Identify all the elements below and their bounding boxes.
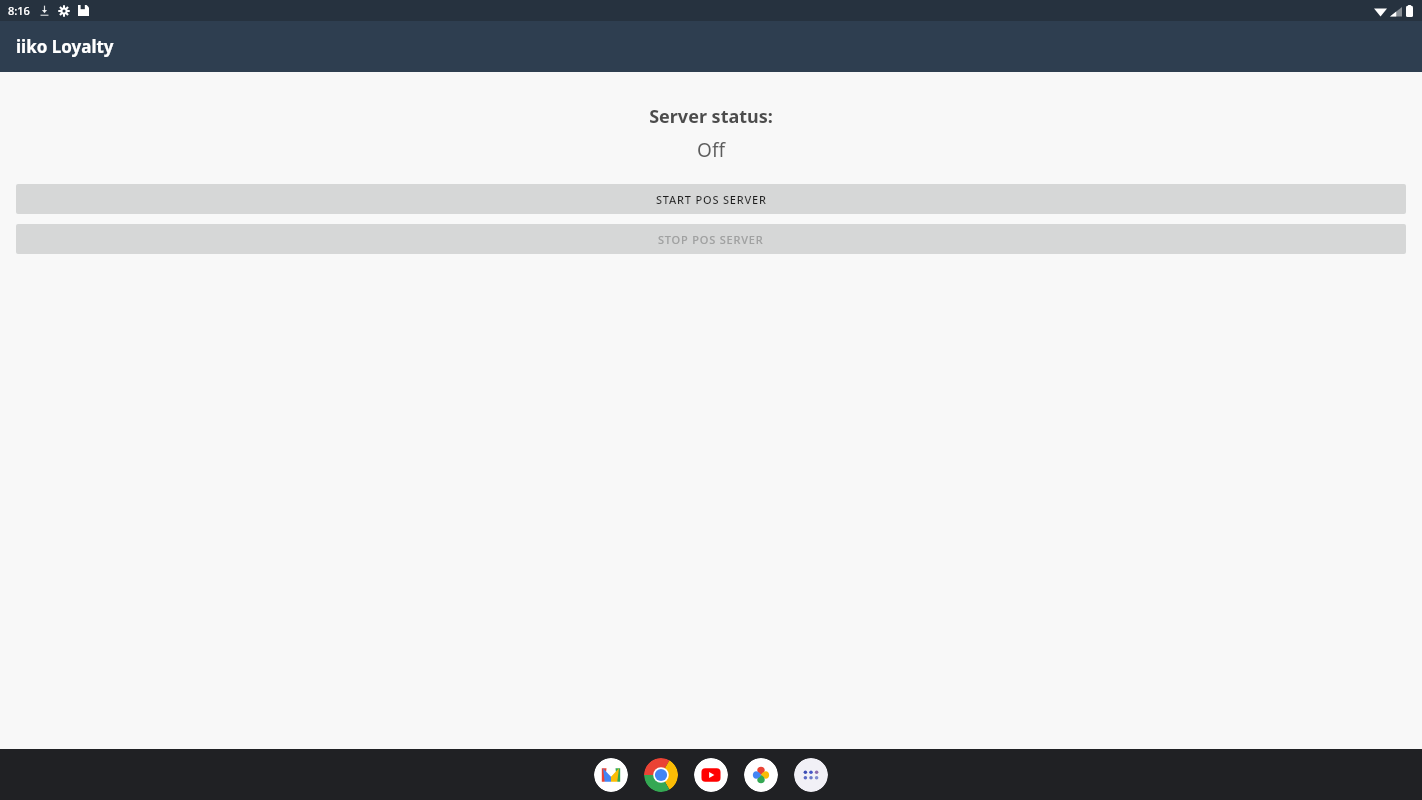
button[interactable]: YouTube bbox=[694, 758, 728, 792]
button[interactable]: All apps bbox=[794, 758, 828, 792]
button[interactable]: STOP POS SERVER bbox=[16, 224, 1406, 254]
staticText: START POS SERVER bbox=[656, 192, 767, 207]
button[interactable]: Gmail bbox=[594, 758, 628, 792]
button[interactable]: Google Photos bbox=[744, 758, 778, 792]
staticText: STOP POS SERVER bbox=[658, 232, 764, 247]
staticText: Off bbox=[697, 137, 725, 163]
staticText: iiko Loyalty bbox=[16, 35, 114, 58]
button[interactable]: Chrome bbox=[644, 758, 678, 792]
staticText: Server status: bbox=[649, 104, 773, 129]
button[interactable]: START POS SERVER bbox=[16, 184, 1406, 214]
staticText: 8:16 bbox=[8, 3, 30, 18]
